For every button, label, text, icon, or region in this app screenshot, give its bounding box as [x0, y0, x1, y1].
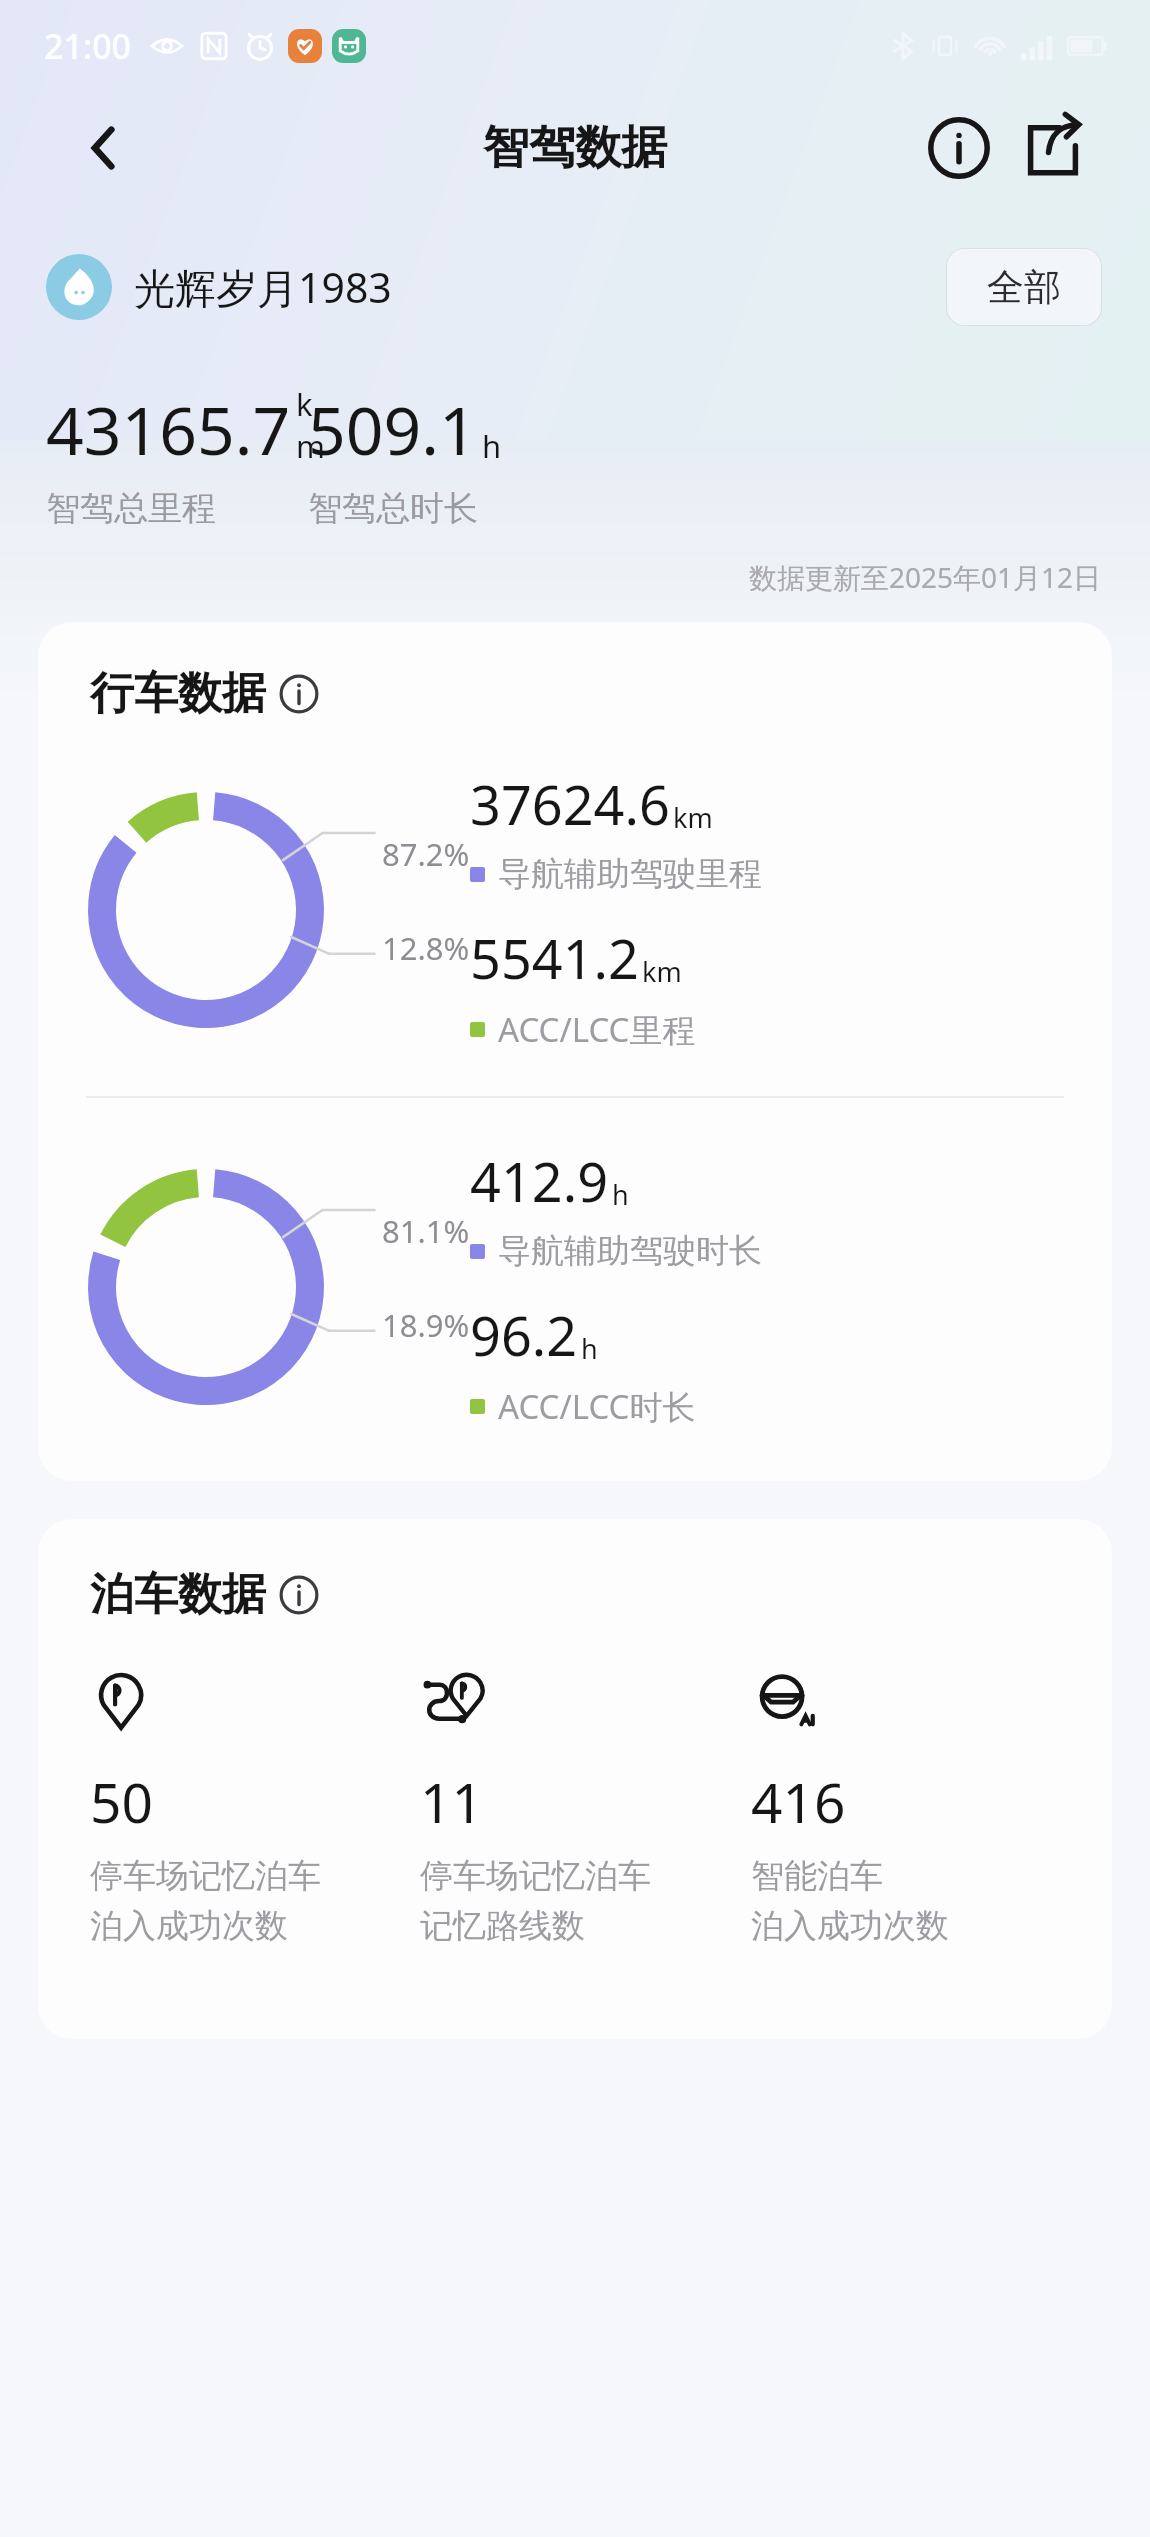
staticText: ACC/LCC里程 — [498, 1007, 696, 1052]
staticText: 智驾总里程 — [46, 487, 216, 530]
staticText: 数据更新至2025年01月12日 — [749, 558, 1102, 596]
staticText: h — [482, 425, 502, 467]
button[interactable]: 光辉岁月1983 — [46, 254, 392, 320]
staticText: 泊入成功次数 — [751, 1905, 949, 1947]
button[interactable]: 11 — [420, 1664, 751, 1947]
staticText: 96.2 — [470, 1298, 578, 1372]
staticText: 11 — [420, 1764, 483, 1839]
staticText: 泊入成功次数 — [90, 1905, 288, 1947]
staticText: 全部 — [987, 264, 1061, 311]
button[interactable]: 50 — [90, 1664, 420, 1947]
staticText: 智驾总时长 — [308, 487, 478, 530]
staticText: 412.9 — [470, 1144, 609, 1218]
staticText: 记忆路线数 — [420, 1905, 585, 1947]
staticText: 21:00 — [44, 23, 132, 69]
staticText: 87.2% — [382, 833, 470, 875]
button[interactable]: 全部 — [946, 248, 1102, 326]
staticText: 18.9% — [382, 1304, 470, 1346]
staticText: 37624.6 — [470, 767, 670, 841]
button[interactable]: Share — [1014, 109, 1092, 187]
staticText: 智能泊车 — [751, 1855, 883, 1897]
staticText: 导航辅助驾驶里程 — [498, 853, 762, 895]
staticText: km — [296, 383, 308, 467]
staticText: 416 — [751, 1764, 846, 1839]
staticText: 光辉岁月1983 — [134, 259, 392, 315]
staticText: 泊车数据 — [90, 1567, 266, 1622]
staticText: km — [673, 799, 713, 836]
staticText: ACC/LCC时长 — [498, 1384, 696, 1429]
staticText: h — [581, 1330, 598, 1367]
staticText: 停车场记忆泊车 — [90, 1855, 321, 1897]
staticText: 81.1% — [382, 1210, 470, 1252]
staticText: 行车数据 — [90, 666, 266, 721]
button[interactable]: 泊车数据 — [90, 1567, 318, 1622]
staticText: 智驾数据 — [483, 119, 667, 177]
staticText: 50 — [90, 1764, 153, 1839]
staticText: 停车场记忆泊车 — [420, 1855, 651, 1897]
button[interactable]: 行车数据 — [90, 666, 318, 721]
staticText: h — [612, 1176, 629, 1213]
staticText: 导航辅助驾驶时长 — [498, 1230, 762, 1272]
button[interactable]: 416 — [751, 1664, 1082, 1947]
button[interactable]: Back — [68, 112, 140, 184]
button[interactable]: Info — [920, 109, 998, 187]
staticText: 509.1 — [308, 384, 477, 474]
staticText: 12.8% — [382, 927, 470, 969]
staticText: km — [642, 953, 682, 990]
staticText: 5541.2 — [470, 921, 639, 995]
staticText: 43165.7 — [46, 384, 291, 474]
